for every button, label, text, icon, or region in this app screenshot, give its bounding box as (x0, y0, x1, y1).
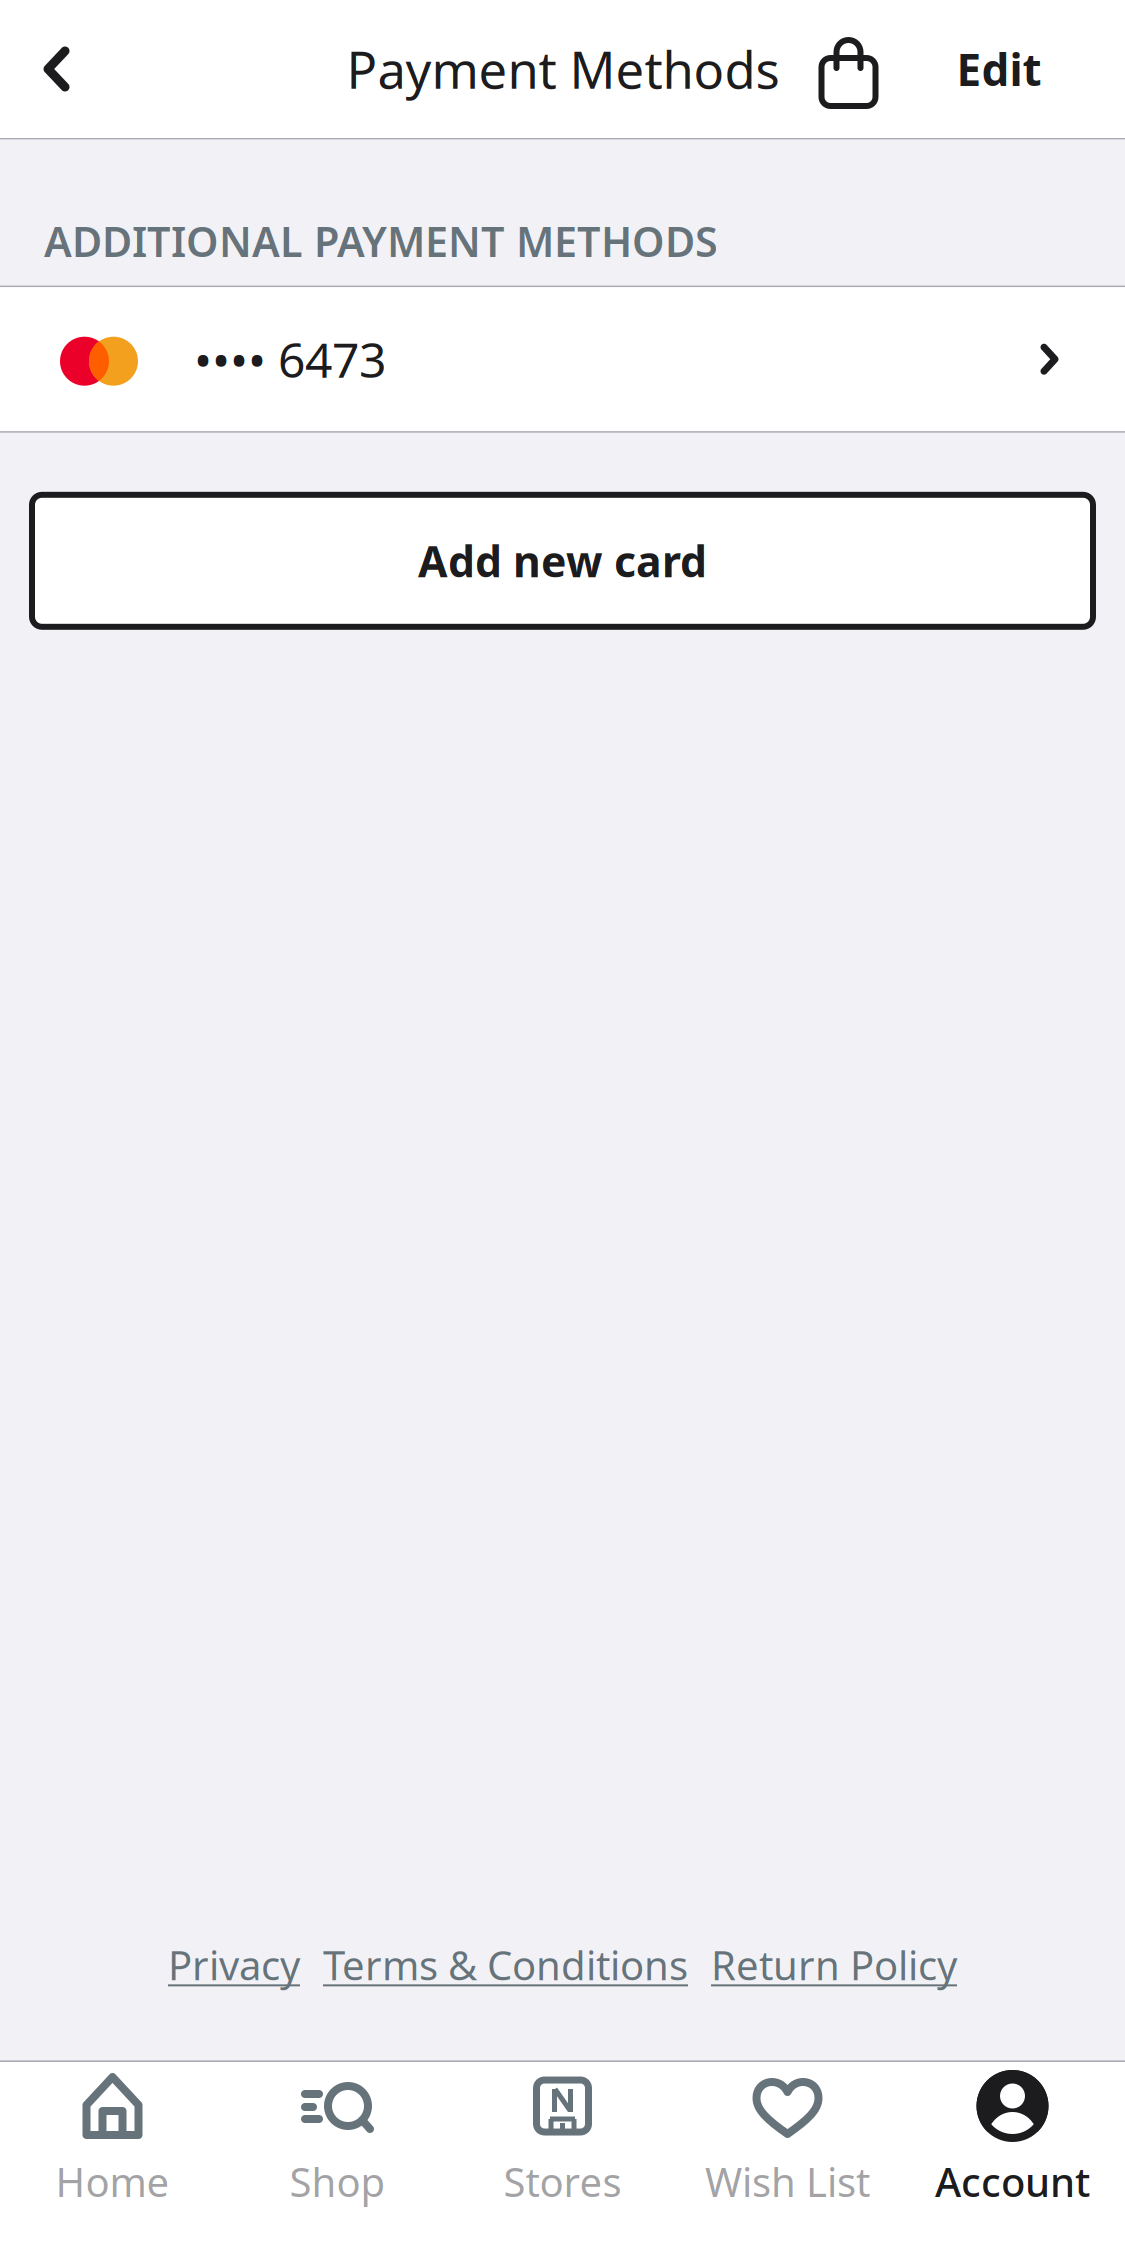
button[interactable]: Back (0, 0, 113, 138)
staticText: •••• 6473 (194, 327, 386, 391)
staticText: Stores (503, 2155, 621, 2208)
staticText: Edit (956, 40, 1041, 98)
staticText: Privacy (168, 1938, 300, 1991)
staticText: ADDITIONAL PAYMENT METHODS (44, 214, 718, 268)
staticText: Add new card (418, 532, 707, 589)
button[interactable]: Shop (225, 2062, 450, 2262)
button[interactable]: Terms & Conditions (323, 1938, 688, 1991)
staticText: Account (935, 2155, 1090, 2208)
staticText: Shop (289, 2155, 385, 2208)
button[interactable]: Edit (873, 0, 1125, 138)
button[interactable]: Privacy (168, 1938, 300, 1991)
button[interactable]: Stores (450, 2062, 675, 2262)
staticText: Terms & Conditions (323, 1938, 688, 1991)
staticText: Home (55, 2155, 169, 2208)
staticText: Payment Methods (346, 35, 779, 103)
staticText: Return Policy (711, 1938, 957, 1991)
button[interactable]: Shopping bag (818, 22, 878, 116)
button[interactable]: Home (0, 2062, 225, 2262)
button[interactable]: •••• 6473 (0, 287, 1125, 431)
staticText: Wish List (705, 2155, 870, 2208)
button[interactable]: Account (900, 2062, 1125, 2262)
button[interactable]: Wish List (675, 2062, 900, 2262)
button[interactable]: Return Policy (711, 1938, 957, 1991)
button[interactable]: Add new card (32, 495, 1093, 627)
